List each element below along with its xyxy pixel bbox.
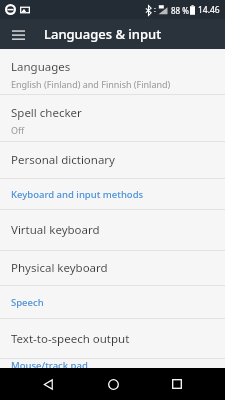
staticText: Mouse/track pad [11,359,88,368]
staticText: 88 % [171,5,189,16]
button[interactable]: Back [31,368,65,400]
staticText: Text-to-speech output [11,331,130,347]
staticText: Languages & input [44,25,162,43]
staticText: : [154,5,156,15]
staticText: Spell checker [11,105,82,121]
button[interactable]: Virtual keyboard [0,210,225,250]
staticText: Physical keyboard [11,260,108,276]
button[interactable]: Physical keyboard [0,251,225,285]
staticText: Speech [11,296,44,309]
button[interactable]: Recent apps [160,368,194,400]
staticText: Virtual keyboard [11,222,100,238]
staticText: Off [11,124,25,136]
staticText: 14.46 [198,4,220,16]
staticText: English (Finland) and Finnish (Finland) [11,78,171,90]
button[interactable]: Personal dictionary [0,142,225,178]
button[interactable]: Spell checker [0,95,225,141]
button[interactable]: Home [96,368,130,400]
button[interactable]: Text-to-speech output [0,319,225,358]
button[interactable]: Languages [0,49,225,94]
staticText: Personal dictionary [11,152,115,168]
staticText: Keyboard and input methods [11,188,144,201]
button[interactable]: Open navigation menu [7,23,29,45]
staticText: Languages [11,59,71,75]
